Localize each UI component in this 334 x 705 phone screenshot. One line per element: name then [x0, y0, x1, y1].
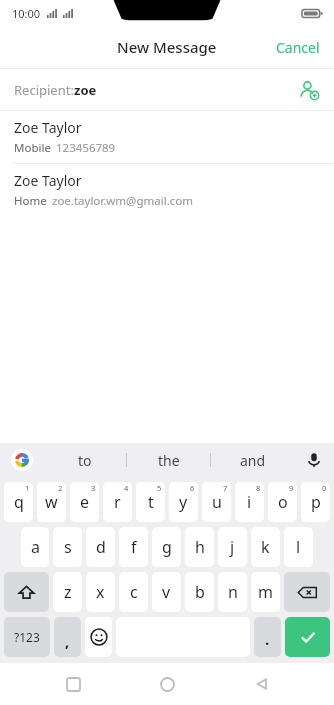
- staticText: b: [195, 581, 205, 603]
- button[interactable]: Send: [285, 617, 330, 657]
- staticText: 4: [124, 483, 129, 493]
- staticText: to: [78, 451, 92, 470]
- staticText: 9: [289, 483, 294, 493]
- button[interactable]: r: [103, 482, 132, 522]
- staticText: Mobile: [14, 140, 51, 156]
- button[interactable]: and: [211, 443, 294, 477]
- staticText: n: [228, 581, 238, 603]
- staticText: e: [80, 491, 90, 513]
- button[interactable]: Zoe Taylor: [0, 111, 334, 163]
- button[interactable]: p: [301, 482, 330, 522]
- button[interactable]: Cancel: [262, 28, 334, 67]
- button[interactable]: d: [86, 527, 115, 567]
- button[interactable]: Recent apps: [51, 663, 95, 705]
- staticText: 123456789: [56, 140, 116, 156]
- button[interactable]: Emoji: [85, 617, 112, 657]
- staticText: v: [162, 581, 171, 603]
- staticText: Cancel: [276, 38, 320, 57]
- staticText: u: [212, 491, 222, 513]
- button[interactable]: h: [185, 527, 214, 567]
- button[interactable]: Home: [145, 663, 189, 705]
- button[interactable]: the: [127, 443, 210, 477]
- button[interactable]: Zoe Taylor: [0, 164, 334, 216]
- staticText: c: [130, 581, 138, 603]
- staticText: Home: [14, 193, 47, 209]
- button[interactable]: n: [218, 572, 247, 612]
- button[interactable]: m: [251, 572, 280, 612]
- button[interactable]: k: [251, 527, 280, 567]
- staticText: 7: [223, 483, 228, 493]
- staticText: y: [179, 491, 188, 513]
- button[interactable]: v: [152, 572, 181, 612]
- staticText: j: [230, 536, 235, 558]
- staticText: 0: [322, 483, 327, 493]
- staticText: d: [96, 536, 106, 558]
- button[interactable]: s: [53, 527, 82, 567]
- button[interactable]: i: [235, 482, 264, 522]
- staticText: ?123: [14, 629, 40, 645]
- staticText: zoe.taylor.wm@gmail.com: [52, 193, 193, 209]
- staticText: l: [296, 536, 301, 558]
- staticText: g: [162, 536, 172, 558]
- staticText: and: [240, 451, 266, 470]
- staticText: t: [148, 491, 154, 513]
- button[interactable]: Back: [240, 663, 284, 705]
- staticText: ,: [65, 631, 70, 651]
- staticText: p: [311, 491, 321, 513]
- button[interactable]: j: [218, 527, 247, 567]
- staticText: m: [258, 581, 273, 603]
- staticText: 2: [58, 483, 63, 493]
- staticText: z: [64, 581, 72, 603]
- button[interactable]: Google: [0, 443, 44, 477]
- button[interactable]: x: [86, 572, 115, 612]
- staticText: Zoe Taylor: [14, 171, 82, 190]
- button[interactable]: b: [185, 572, 214, 612]
- button[interactable]: g: [152, 527, 181, 567]
- staticText: 6: [190, 483, 195, 493]
- button[interactable]: f: [119, 527, 148, 567]
- button[interactable]: t: [136, 482, 165, 522]
- staticText: i: [247, 491, 252, 513]
- staticText: 3: [91, 483, 96, 493]
- button[interactable]: Backspace: [284, 572, 330, 612]
- staticText: r: [114, 491, 121, 513]
- staticText: 5: [157, 483, 162, 493]
- button[interactable]: to: [44, 443, 126, 477]
- staticText: 10:00: [12, 6, 41, 21]
- staticText: s: [64, 536, 72, 558]
- staticText: a: [31, 536, 40, 558]
- button[interactable]: ?123: [4, 617, 50, 657]
- staticText: Recipient:: [14, 81, 74, 99]
- button[interactable]: Add recipient: [294, 75, 324, 105]
- staticText: zoe: [74, 81, 97, 99]
- button[interactable]: w: [37, 482, 66, 522]
- staticText: h: [195, 536, 205, 558]
- staticText: .: [265, 629, 270, 649]
- staticText: Zoe Taylor: [14, 118, 82, 137]
- staticText: New Message: [117, 37, 217, 57]
- button[interactable]: ,: [54, 617, 81, 657]
- button[interactable]: c: [119, 572, 148, 612]
- button[interactable]: Recipient:: [0, 69, 334, 110]
- button[interactable]: .: [254, 617, 281, 657]
- staticText: w: [45, 491, 58, 513]
- button[interactable]: q: [4, 482, 33, 522]
- staticText: f: [131, 536, 137, 558]
- staticText: k: [261, 536, 270, 558]
- staticText: 1: [25, 483, 30, 493]
- button[interactable]: Shift: [4, 572, 49, 612]
- staticText: the: [158, 451, 180, 470]
- staticText: o: [278, 491, 288, 513]
- button[interactable]: u: [202, 482, 231, 522]
- button[interactable]: e: [70, 482, 99, 522]
- button[interactable]: a: [21, 527, 49, 567]
- staticText: x: [96, 581, 105, 603]
- button[interactable]: z: [53, 572, 82, 612]
- button[interactable]: l: [284, 527, 313, 567]
- staticText: q: [14, 491, 24, 513]
- button[interactable]: Voice input: [294, 443, 334, 477]
- staticText: 8: [256, 483, 261, 493]
- button[interactable]: o: [268, 482, 297, 522]
- button[interactable]: y: [169, 482, 198, 522]
